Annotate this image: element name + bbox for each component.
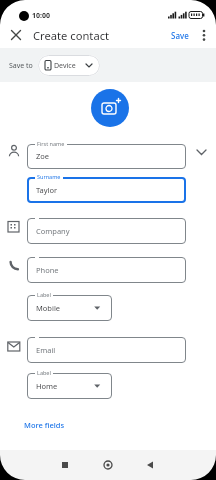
staticText: Device bbox=[54, 61, 76, 71]
button[interactable]: Device bbox=[38, 55, 100, 76]
button[interactable] bbox=[27, 218, 186, 244]
staticText: Zoe bbox=[36, 151, 50, 161]
button[interactable]: Save bbox=[171, 30, 189, 41]
button[interactable] bbox=[141, 456, 159, 474]
staticText: Taylor bbox=[36, 185, 58, 195]
button[interactable] bbox=[27, 337, 186, 363]
button[interactable] bbox=[91, 89, 129, 127]
staticText: First name bbox=[37, 140, 65, 147]
staticText: Email bbox=[36, 345, 56, 355]
button[interactable] bbox=[27, 177, 186, 203]
button[interactable] bbox=[27, 295, 112, 321]
staticText: Phone bbox=[36, 265, 59, 275]
staticText: Label bbox=[37, 291, 51, 298]
button[interactable] bbox=[8, 27, 24, 43]
button[interactable] bbox=[99, 456, 117, 474]
staticText: Save bbox=[171, 30, 189, 41]
staticText: Surname bbox=[37, 173, 61, 180]
button[interactable] bbox=[27, 144, 186, 169]
staticText: Company bbox=[36, 226, 70, 236]
button[interactable] bbox=[198, 28, 210, 43]
button[interactable] bbox=[27, 257, 186, 283]
staticText: Save to bbox=[9, 61, 33, 71]
staticText: Mobile bbox=[36, 303, 61, 313]
button[interactable] bbox=[56, 456, 74, 474]
staticText: Label bbox=[37, 369, 51, 376]
staticText: Create contact bbox=[33, 28, 110, 43]
staticText: More fields bbox=[24, 420, 65, 430]
staticText: 10:00 bbox=[32, 11, 50, 21]
staticText: Home bbox=[36, 381, 58, 391]
button[interactable] bbox=[27, 373, 112, 399]
button[interactable]: More fields bbox=[24, 420, 65, 430]
